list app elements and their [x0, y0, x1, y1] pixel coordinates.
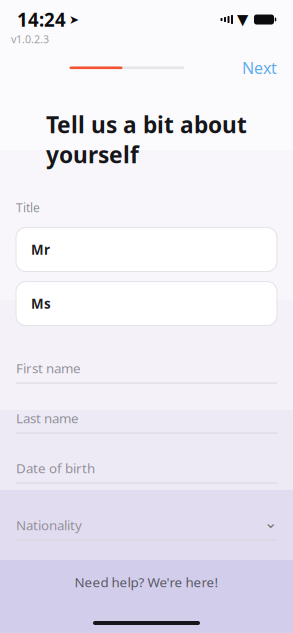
staticText: Title — [16, 200, 40, 215]
button[interactable]: Need help? We're here! — [64, 567, 228, 597]
staticText: v1.0.2.3 — [11, 32, 49, 46]
staticText: 14:24 — [17, 7, 66, 32]
button[interactable]: Last name — [16, 410, 277, 434]
staticText: ➤ — [69, 13, 79, 26]
button[interactable]: Next — [234, 52, 285, 83]
staticText: ⌄ — [264, 513, 277, 532]
staticText: First name — [16, 359, 81, 377]
staticText: Mr — [31, 241, 50, 258]
staticText: Ms — [31, 295, 51, 312]
staticText: Next — [242, 57, 277, 78]
staticText: ▼ — [237, 11, 248, 28]
button[interactable]: Mr — [16, 228, 277, 272]
button[interactable]: Ms — [16, 282, 277, 326]
staticText: Last name — [16, 409, 79, 427]
button[interactable]: Date of birth — [16, 460, 277, 484]
button[interactable]: Nationality — [16, 517, 277, 541]
staticText: Nationality — [16, 516, 82, 534]
button[interactable]: First name — [16, 360, 277, 384]
staticText: Date of birth — [16, 459, 95, 477]
staticText: Need help? We're here! — [74, 573, 218, 591]
staticText: Tell us a bit about yourself — [46, 109, 247, 170]
